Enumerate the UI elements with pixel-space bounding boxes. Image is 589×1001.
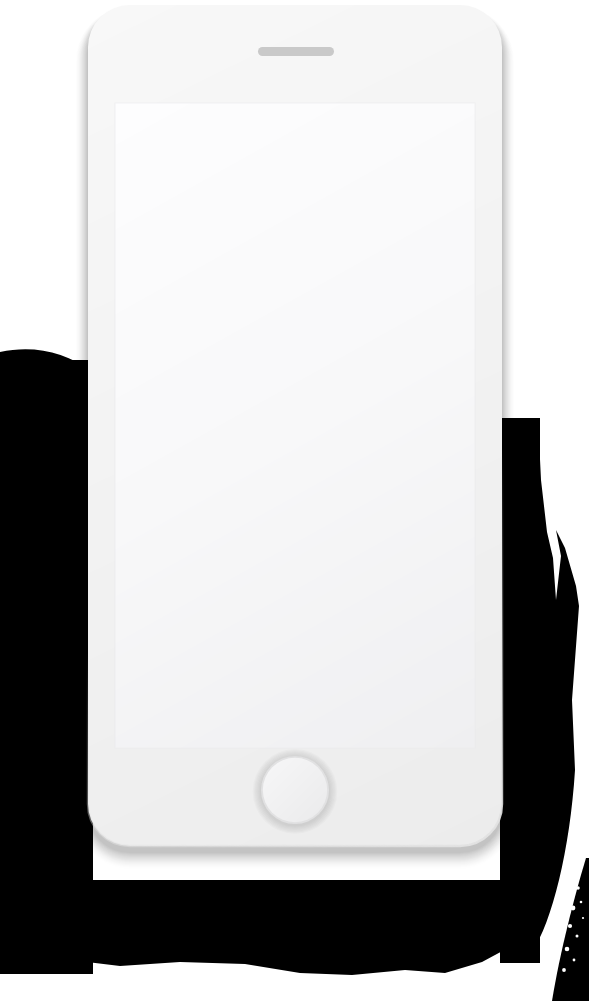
- button[interactable]: Smartphone illustration: [0, 0, 589, 1001]
